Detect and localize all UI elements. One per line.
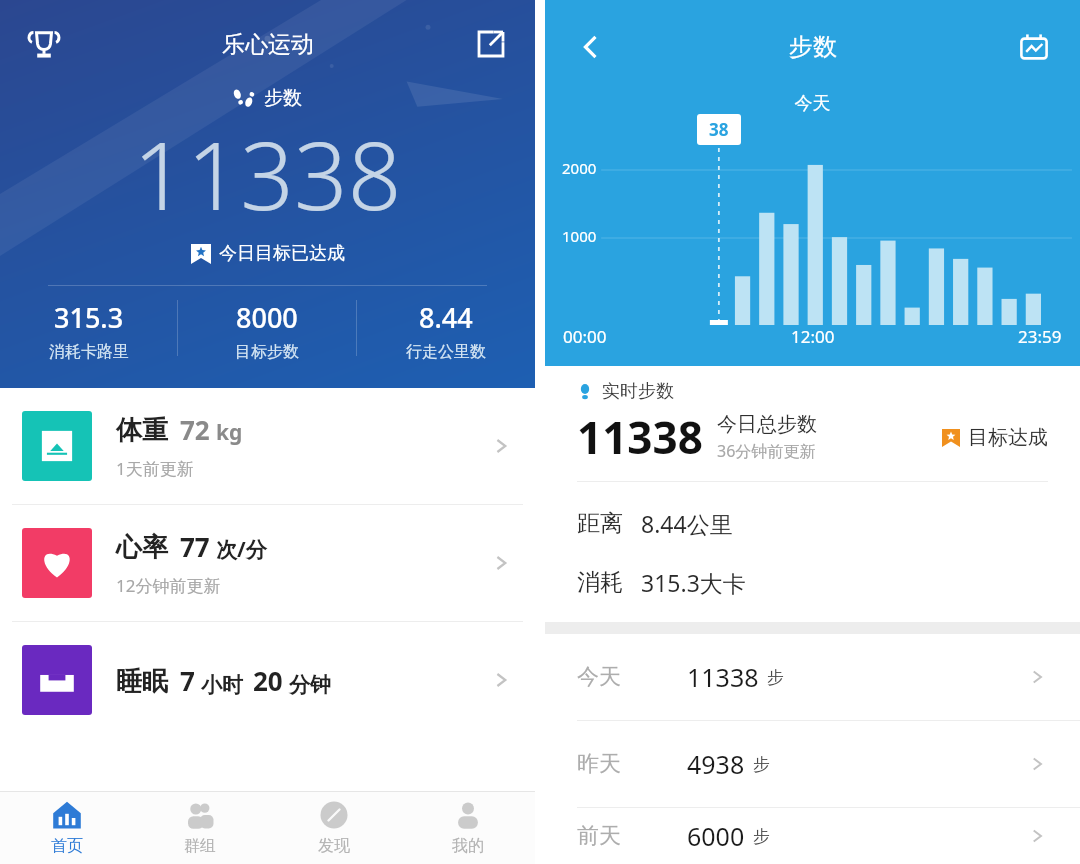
staticText: 38 [709,118,729,141]
button[interactable]: Achievements [16,16,72,72]
staticText: 12:00 [791,325,835,348]
staticText: 消耗 [577,568,623,597]
staticText: 步数 [264,86,302,110]
staticText: 目标达成 [968,425,1048,450]
button[interactable]: 315.3 [0,286,177,370]
staticText: 315.3大卡 [641,567,746,598]
staticText: 今天 [577,663,621,691]
button[interactable]: 8000 [178,286,356,370]
staticText: 睡眠 [116,665,168,698]
staticText: 11338 [133,110,402,238]
staticText: 行走公里数 [406,342,486,362]
staticText: 今日总步数 [717,412,817,437]
button[interactable]: 首页 [0,792,133,864]
staticText: 分钟 [289,672,331,698]
staticText: 目标步数 [235,342,299,362]
button[interactable]: 睡眠 [0,622,535,738]
staticText: 8.44 [419,299,473,336]
staticText: 昨天 [577,750,621,778]
staticText: 次/分 [216,535,267,564]
button[interactable]: 体重 [0,388,535,504]
staticText: 今日目标已达成 [219,242,345,265]
button[interactable]: 8.44 [357,286,535,370]
staticText: 1天前更新 [116,457,194,480]
button[interactable]: 发现 [267,792,401,864]
staticText: 00:00 [563,325,607,348]
button[interactable]: 昨天 [545,721,1080,807]
staticText: 首页 [51,836,83,856]
staticText: 步数 [789,32,837,62]
staticText: 20 [253,663,283,698]
staticText: 步 [767,667,784,688]
staticText: 11338 [577,407,703,467]
staticText: 2000 [562,158,597,178]
staticText: 72 [180,412,210,447]
button[interactable]: Share [463,16,519,72]
button[interactable]: 前天 [545,808,1080,864]
staticText: 1000 [562,226,597,246]
staticText: 77 [180,529,210,564]
staticText: 群组 [184,836,216,856]
button[interactable]: 今天 [545,634,1080,720]
staticText: 8.44公里 [641,508,733,539]
button[interactable]: 目标达成 [942,425,1048,450]
staticText: kg [216,418,243,447]
staticText: 步 [753,826,770,847]
staticText: 实时步数 [602,380,674,403]
staticText: 4938 [687,747,745,781]
staticText: 今天 [545,92,1080,115]
staticText: 36分钟前更新 [717,440,816,462]
button[interactable]: 心率 [0,505,535,621]
staticText: 6000 [687,819,745,853]
staticText: 前天 [577,822,621,850]
staticText: 315.3 [54,299,124,336]
staticText: 12分钟前更新 [116,574,221,597]
button[interactable]: 我的 [401,792,535,864]
staticText: 7 [180,663,195,698]
staticText: 消耗卡路里 [49,342,129,362]
staticText: 心率 [116,531,168,564]
staticText: 小时 [201,672,243,698]
button[interactable]: History [1006,19,1062,75]
staticText: 发现 [318,836,350,856]
button[interactable]: Back [563,19,619,75]
staticText: 体重 [116,414,168,447]
staticText: 我的 [452,836,484,856]
staticText: 8000 [236,299,298,336]
staticText: 11338 [687,660,759,694]
staticText: 步 [753,754,770,775]
staticText: 23:59 [1018,325,1062,348]
staticText: 距离 [577,509,623,538]
button[interactable]: 群组 [133,792,267,864]
staticText: 乐心运动 [222,30,314,59]
